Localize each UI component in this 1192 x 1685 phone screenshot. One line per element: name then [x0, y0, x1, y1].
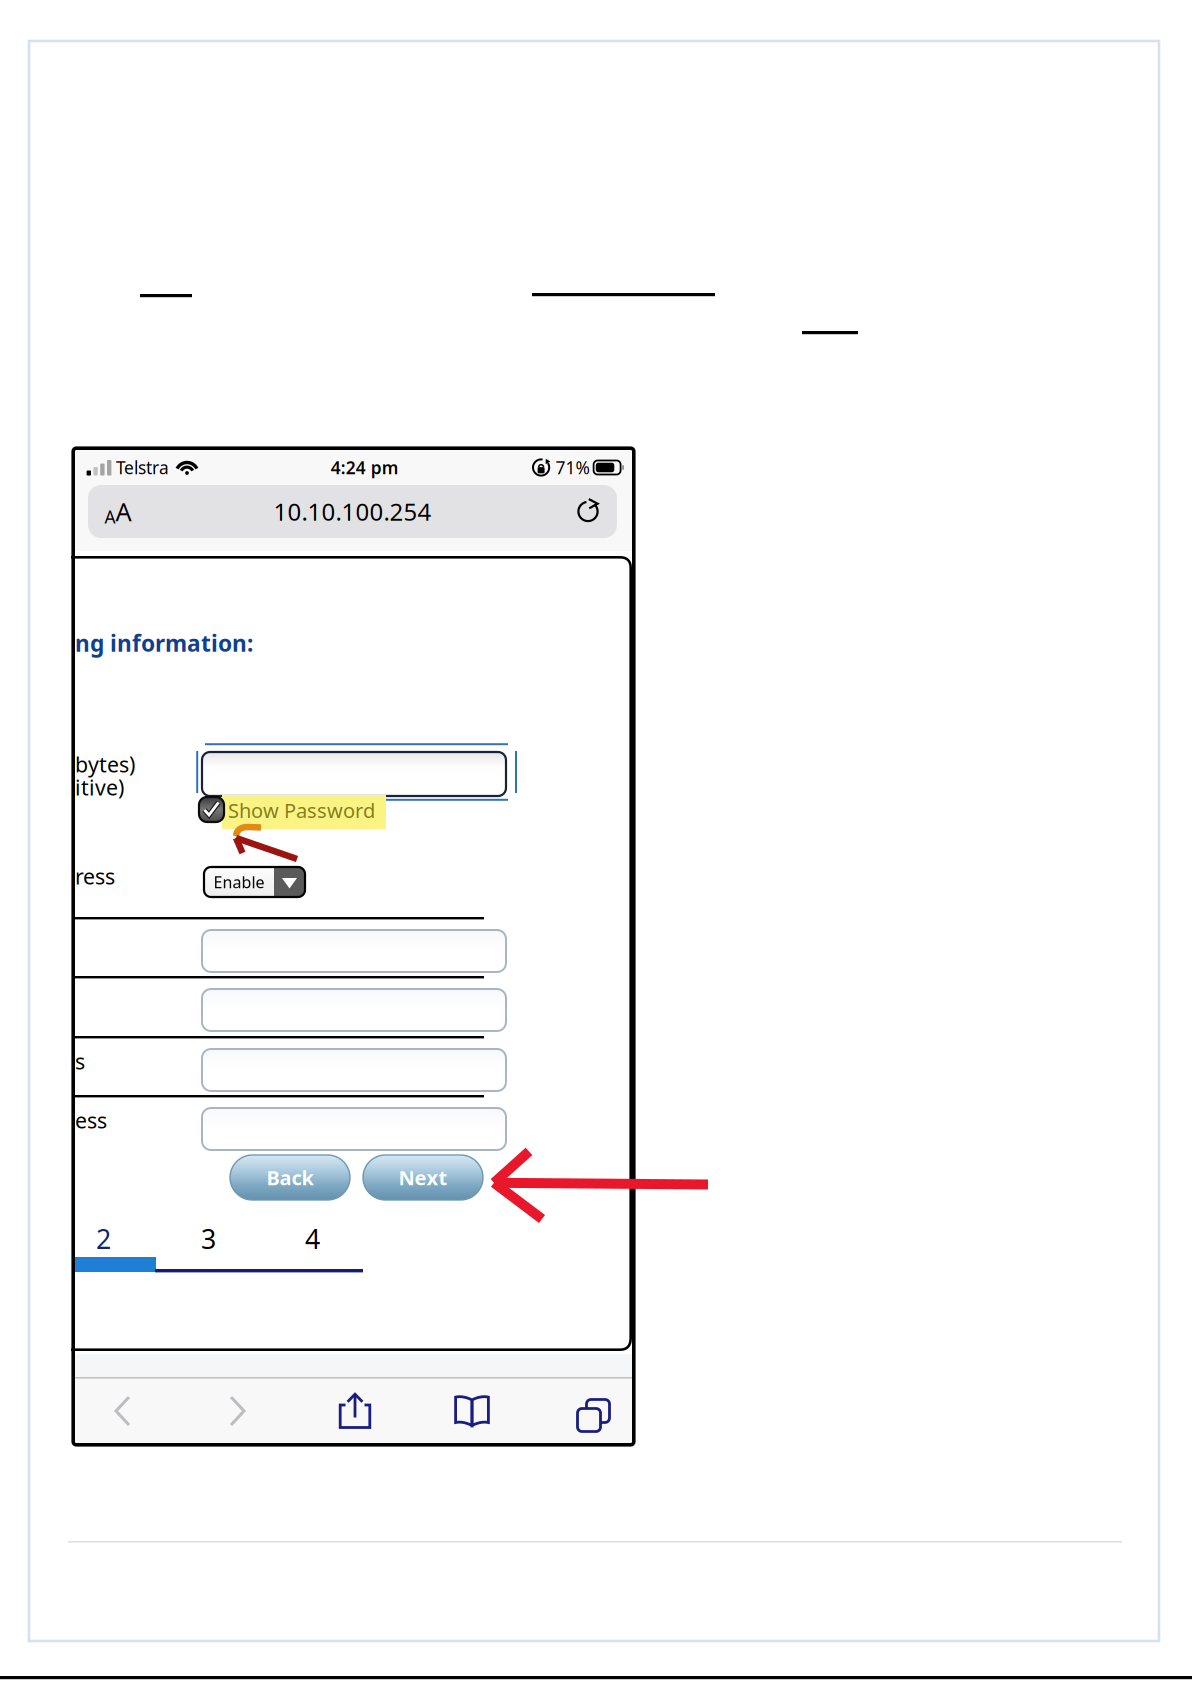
staticText: s — [75, 1047, 85, 1075]
staticText: Next — [398, 1164, 447, 1191]
button[interactable]: Enable — [204, 867, 305, 897]
button[interactable]: Forward — [183, 1379, 293, 1443]
button[interactable]: Text size — [89, 485, 147, 538]
button[interactable]: Back — [68, 1379, 178, 1443]
button[interactable]: Back — [230, 1155, 350, 1200]
staticText: Show Password — [228, 797, 375, 824]
button[interactable]: Reload — [565, 485, 611, 538]
staticText: 4 — [305, 1221, 320, 1256]
staticText: 4:24 pm — [331, 456, 399, 479]
staticText: 71% — [556, 456, 590, 479]
staticText: bytes) — [75, 750, 135, 778]
staticText: 3 — [201, 1221, 216, 1256]
staticText: ng information: — [75, 628, 253, 658]
staticText: Back — [266, 1164, 313, 1191]
staticText: Telstra — [116, 456, 169, 479]
staticText: ess — [75, 1106, 107, 1134]
button[interactable]: Share — [300, 1379, 410, 1443]
button[interactable]: Next — [363, 1155, 483, 1200]
staticText: A — [104, 505, 115, 528]
staticText: itive) — [75, 773, 124, 801]
staticText: ress — [75, 862, 115, 890]
button[interactable]: Bookmarks — [417, 1379, 527, 1443]
staticText: 10.10.100.254 — [273, 496, 431, 527]
button[interactable]: Tabs — [534, 1379, 644, 1443]
staticText: A — [115, 495, 131, 528]
staticText: Enable — [213, 871, 264, 893]
staticText: 2 — [96, 1221, 111, 1256]
